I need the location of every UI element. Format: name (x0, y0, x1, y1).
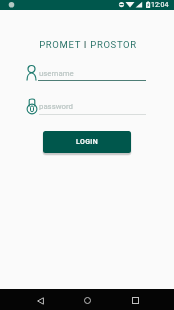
staticText: password (39, 102, 73, 111)
staticText: LOGIN (76, 138, 99, 146)
button[interactable]: Home (76, 290, 98, 310)
staticText: username (39, 69, 74, 78)
staticText: 12:04 (151, 1, 169, 9)
button[interactable]: LOGIN (43, 131, 131, 153)
button[interactable]: Recents (124, 290, 146, 310)
button[interactable]: Back (29, 290, 51, 310)
staticText: PROMET I PROSTOR (1, 39, 174, 50)
